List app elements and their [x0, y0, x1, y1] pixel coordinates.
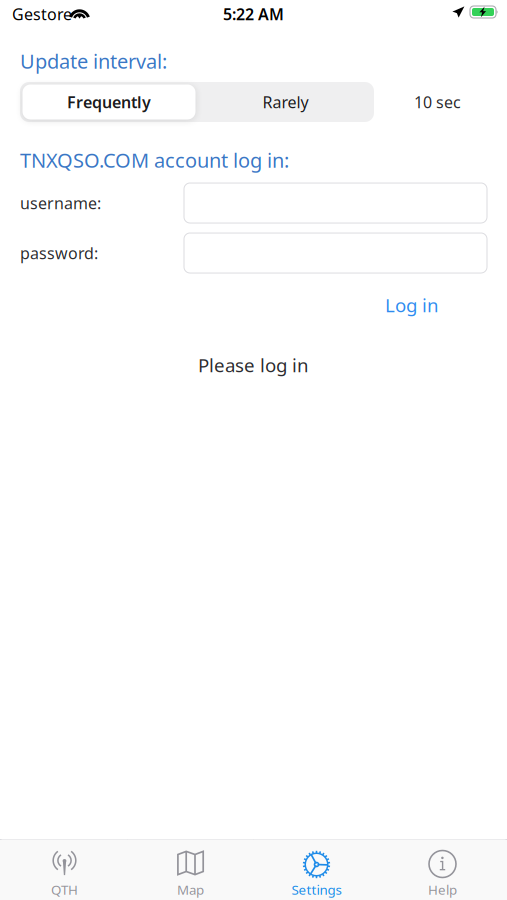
staticText: 10 sec	[414, 91, 461, 113]
button[interactable]: Help	[379, 839, 505, 900]
staticText: Rarely	[262, 91, 308, 113]
button[interactable]: Frequently	[21, 82, 196, 122]
button[interactable]: Rarely	[197, 82, 374, 122]
staticText: Gestore	[12, 3, 72, 25]
staticText: 5:22 AM	[223, 3, 284, 25]
staticText: Please log in	[198, 353, 309, 377]
staticText: username:	[20, 192, 101, 214]
button[interactable]: Settings	[253, 839, 379, 900]
button[interactable]: Map	[127, 839, 253, 900]
staticText: Frequently	[67, 91, 151, 113]
staticText: TNXQSO.COM account log in:	[20, 147, 289, 173]
button[interactable]: QTH	[1, 839, 127, 900]
staticText: Settings	[291, 881, 341, 898]
staticText: QTH	[51, 881, 78, 898]
staticText: Log in	[385, 293, 439, 317]
staticText: Help	[428, 881, 457, 898]
staticText: Map	[177, 881, 204, 898]
staticText: Update interval:	[20, 48, 167, 74]
staticText: password:	[20, 242, 98, 264]
button[interactable]: Log in	[382, 292, 442, 318]
